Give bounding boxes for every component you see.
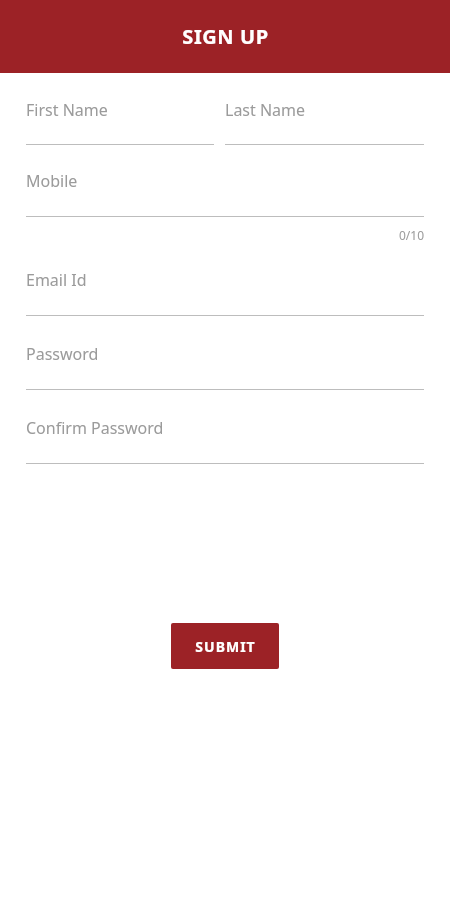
staticText: SIGN UP: [182, 23, 269, 50]
staticText: Password: [26, 343, 99, 365]
staticText: SUBMIT: [195, 637, 256, 656]
staticText: Last Name: [225, 99, 306, 121]
staticText: First Name: [26, 99, 108, 121]
staticText: 0/10: [26, 227, 424, 243]
button[interactable]: Mobile: [26, 170, 424, 217]
button[interactable]: Email Id: [26, 269, 424, 316]
button[interactable]: Password: [26, 343, 424, 390]
staticText: Mobile: [26, 170, 78, 192]
button[interactable]: SUBMIT: [171, 623, 279, 669]
staticText: Email Id: [26, 269, 87, 291]
staticText: Confirm Password: [26, 417, 164, 439]
button[interactable]: First Name: [26, 99, 214, 145]
button[interactable]: Last Name: [225, 99, 424, 145]
button[interactable]: Confirm Password: [26, 417, 424, 464]
